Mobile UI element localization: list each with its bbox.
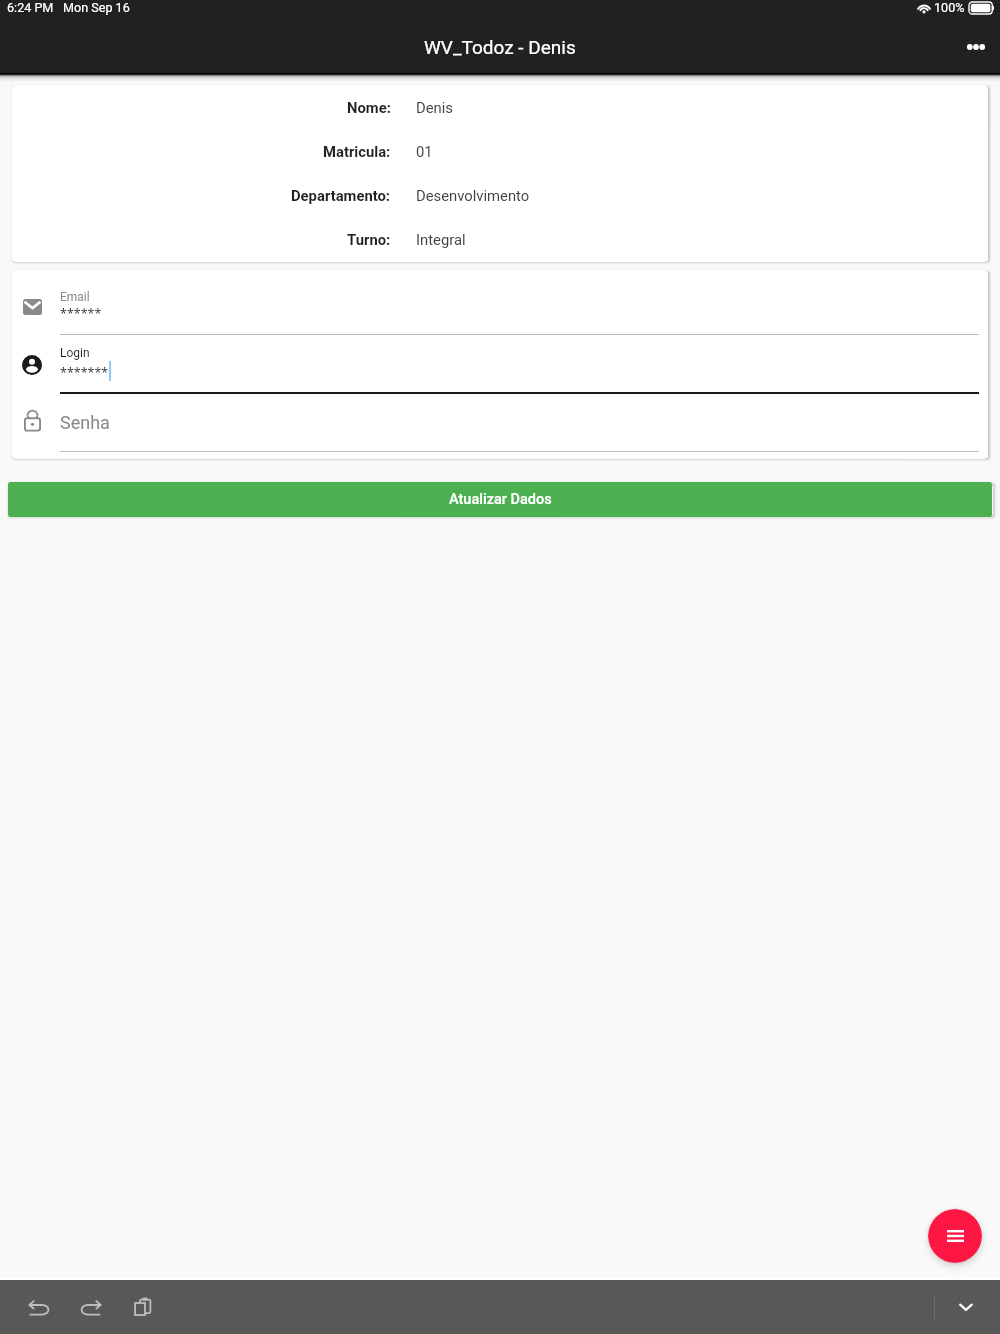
staticText: WV_Todoz - Denis — [424, 36, 576, 58]
button[interactable]: Email — [12, 270, 988, 335]
staticText: Denis — [416, 99, 453, 116]
staticText: 100% — [934, 0, 965, 15]
staticText: Mon Sep 16 — [63, 0, 130, 15]
button[interactable]: Menu — [928, 1209, 982, 1263]
staticText: Desenvolvimento — [416, 187, 530, 204]
staticText: Departamento: — [291, 187, 391, 204]
button[interactable]: Senha — [12, 394, 988, 452]
button[interactable]: More options — [948, 21, 1000, 73]
button[interactable]: Clipboard — [125, 1289, 161, 1325]
button[interactable]: Hide keyboard — [948, 1289, 984, 1325]
staticText: Nome: — [347, 99, 391, 116]
staticText: 01 — [416, 143, 433, 160]
staticText: Atualizar Dados — [449, 491, 552, 508]
staticText: Integral — [416, 231, 466, 248]
button[interactable]: Redo — [73, 1289, 109, 1325]
button[interactable]: Undo — [21, 1289, 57, 1325]
button[interactable]: Atualizar Dados — [8, 482, 992, 517]
staticText: 6:24 PM — [7, 0, 54, 15]
staticText: Turno: — [347, 231, 391, 248]
staticText: Login — [60, 346, 90, 360]
staticText: Senha — [60, 412, 110, 433]
staticText: Matricula: — [323, 143, 391, 160]
staticText: ****** — [60, 305, 102, 322]
staticText: Email — [60, 290, 90, 304]
staticText: ******* — [60, 364, 109, 381]
button[interactable]: Login — [12, 335, 988, 394]
